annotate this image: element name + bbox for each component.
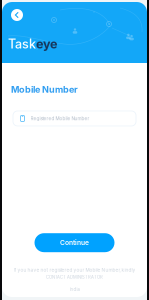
- staticText: Mobile Number: [11, 84, 78, 95]
- staticText: Registered Mobile Number: [30, 116, 89, 121]
- staticText: India: [69, 287, 79, 292]
- staticText: eye: [36, 36, 57, 51]
- staticText: Continue: [60, 239, 89, 247]
- staticText: If you have not registered your Mobile N…: [13, 267, 135, 273]
- staticText: CONTACT ADMINISTRATOR: [46, 275, 103, 280]
- button[interactable]: Back: [9, 7, 25, 23]
- staticText: Task: [8, 36, 36, 51]
- button[interactable]: Continue: [34, 233, 114, 252]
